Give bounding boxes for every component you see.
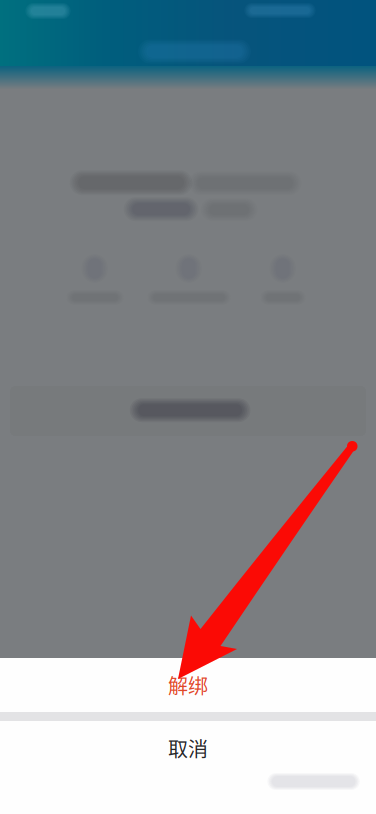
button[interactable]: 解绑	[0, 658, 376, 712]
button[interactable]: 取消	[0, 721, 376, 775]
staticText: 解绑	[168, 670, 208, 699]
staticText: 取消	[168, 733, 208, 762]
